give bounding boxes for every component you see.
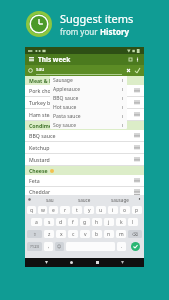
button[interactable]: Soy sauce [50, 121, 127, 129]
staticText: f [72, 219, 74, 226]
button[interactable]: Calendar [127, 56, 134, 63]
button[interactable]: h [92, 218, 102, 226]
staticText: Hot sauce [53, 104, 77, 111]
other: Reorder [134, 178, 140, 183]
staticText: Sausage [53, 77, 73, 84]
button[interactable]: d [56, 218, 66, 226]
button[interactable]: v [80, 230, 90, 238]
staticText: l [132, 219, 134, 226]
staticText: Ketchup [29, 144, 50, 151]
button[interactable]: y [84, 206, 94, 214]
button[interactable]: Hide keyboard [119, 259, 126, 266]
staticText: This week [38, 55, 71, 64]
button[interactable]: Meat & Poultry [25, 76, 144, 85]
button[interactable]: g [80, 218, 90, 226]
button[interactable]: b [92, 230, 102, 238]
staticText: b [95, 231, 99, 238]
button[interactable]: p [132, 206, 142, 214]
button[interactable]: Sausage [50, 76, 127, 85]
button[interactable]: Backspace [128, 230, 142, 238]
staticText: History [100, 26, 130, 37]
button[interactable]: j [104, 218, 114, 226]
button[interactable]: sau [32, 195, 67, 204]
button[interactable]: Turkey breast [25, 97, 144, 108]
staticText: from your [60, 26, 100, 37]
button[interactable]: Cheese [25, 166, 144, 175]
staticText: p [135, 207, 139, 214]
button[interactable]: Pork chops [25, 85, 144, 96]
staticText: s [48, 219, 51, 226]
button[interactable]: BBQ sauce [25, 130, 144, 141]
button[interactable]: n [104, 230, 114, 238]
staticText: sau [36, 66, 45, 73]
button[interactable]: Feta [25, 175, 144, 186]
staticText: d [59, 219, 63, 226]
staticText: m [119, 231, 124, 238]
staticText: o [123, 207, 127, 214]
button[interactable]: Mustard [25, 154, 144, 165]
button[interactable]: , [44, 242, 53, 251]
staticText: Soy sauce [53, 122, 77, 129]
button[interactable]: sauce [67, 195, 102, 204]
staticText: ?123 [30, 244, 40, 250]
button[interactable]: o [120, 206, 130, 214]
staticText: a [35, 219, 38, 226]
button[interactable]: e [49, 206, 58, 214]
button[interactable]: Ham steak [25, 109, 144, 120]
button[interactable]: Pasta sauce [50, 112, 127, 121]
button[interactable]: sausage [102, 195, 137, 204]
staticText: w [41, 207, 45, 214]
button[interactable]: More options [134, 56, 141, 63]
other: Reorder [134, 133, 140, 138]
button[interactable]: s [44, 218, 54, 226]
button[interactable]: z [44, 230, 54, 238]
button[interactable]: k [116, 218, 126, 226]
staticText: i [112, 207, 114, 214]
button[interactable]: Mic [137, 197, 142, 202]
button[interactable]: u [96, 206, 106, 214]
button[interactable]: f [68, 218, 78, 226]
staticText: q [30, 207, 34, 214]
button[interactable]: m [116, 230, 126, 238]
button[interactable]: Emoji [55, 242, 64, 251]
button[interactable]: Done [131, 242, 140, 251]
button[interactable]: x [56, 230, 66, 238]
button[interactable]: Back [43, 259, 50, 266]
button[interactable]: t [72, 206, 82, 214]
staticText: Ham steak [29, 111, 56, 118]
button[interactable]: . [117, 242, 126, 251]
staticText: r [64, 207, 67, 214]
button[interactable]: Hot sauce [50, 103, 127, 112]
button[interactable]: Recents [94, 259, 101, 266]
button[interactable]: w [38, 206, 47, 214]
button[interactable]: Shift [27, 230, 42, 238]
button[interactable]: c [68, 230, 78, 238]
button[interactable]: i [108, 206, 118, 214]
button[interactable]: BBQ sauce [50, 94, 127, 103]
button[interactable]: sau [25, 65, 144, 76]
staticText: Meat & Poultry [29, 77, 68, 84]
button[interactable]: Applesauce [50, 85, 127, 94]
button[interactable]: Home [68, 259, 75, 266]
button[interactable]: Confirm [134, 67, 141, 74]
button[interactable]: Menu [25, 54, 144, 65]
staticText: Condiments & Sauces [29, 122, 85, 129]
staticText: x [60, 231, 63, 238]
button[interactable]: Clear [125, 67, 132, 74]
other: Reorder [134, 100, 140, 105]
button[interactable]: Ketchup [25, 142, 144, 153]
button[interactable]: q [27, 206, 36, 214]
staticText: Pasta sauce [53, 113, 81, 120]
button[interactable]: Condiments & Sauces [25, 121, 144, 130]
button[interactable]: Symbols [27, 242, 42, 251]
staticText: Cheese [29, 167, 48, 174]
button[interactable]: l [128, 218, 138, 226]
other: Reorder [134, 145, 140, 150]
button[interactable]: a [31, 218, 42, 226]
button[interactable]: Menu [28, 56, 35, 63]
button[interactable]: Cheddar [25, 187, 144, 195]
staticText: t [76, 207, 78, 214]
button[interactable]: r [60, 206, 70, 214]
button[interactable]: Voice [27, 197, 32, 202]
